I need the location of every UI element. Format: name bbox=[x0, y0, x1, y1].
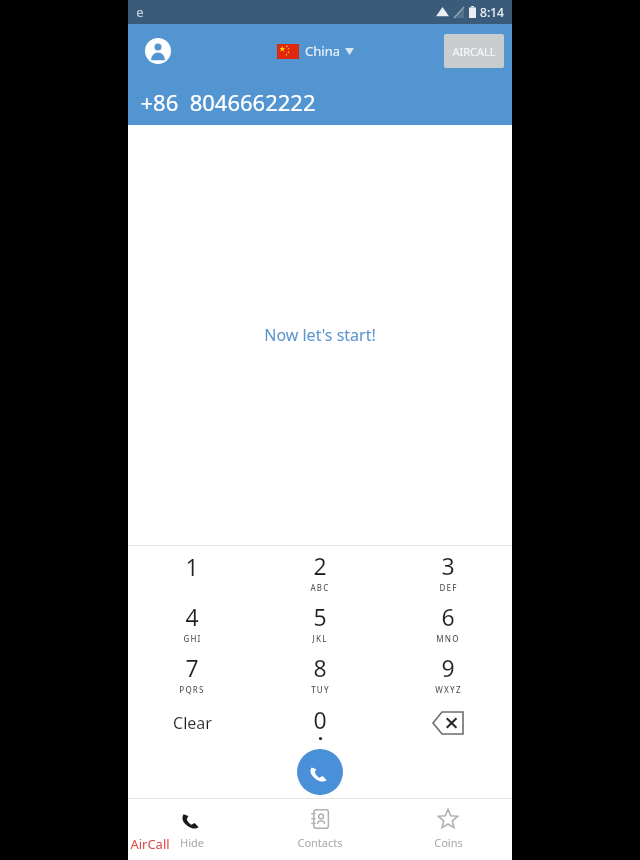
button[interactable]: 3 bbox=[384, 546, 512, 597]
button[interactable]: 4 bbox=[128, 597, 256, 648]
staticText: AirCall bbox=[130, 835, 170, 853]
button[interactable]: AIRCALL bbox=[444, 34, 504, 68]
staticText: TUY bbox=[311, 684, 330, 695]
staticText: JKL bbox=[312, 633, 328, 644]
staticText: e bbox=[136, 3, 144, 21]
button[interactable]: 2 bbox=[256, 546, 384, 597]
button[interactable]: Contacts bbox=[256, 798, 384, 860]
staticText: ABC bbox=[310, 582, 330, 593]
button[interactable]: 5 bbox=[256, 597, 384, 648]
staticText: Contacts bbox=[297, 835, 343, 850]
staticText: +86 8046662222 bbox=[140, 87, 316, 117]
button[interactable]: 9 bbox=[384, 648, 512, 699]
button[interactable]: 8 bbox=[256, 648, 384, 699]
button[interactable]: 0 bbox=[256, 699, 384, 746]
button[interactable]: 6 bbox=[384, 597, 512, 648]
staticText: Coins bbox=[434, 835, 463, 850]
staticText: 1 bbox=[185, 551, 199, 582]
button[interactable]: Hide bbox=[128, 798, 256, 860]
staticText: 8 bbox=[313, 652, 327, 683]
staticText: 2 bbox=[313, 550, 327, 581]
staticText: Now let's start! bbox=[264, 324, 376, 346]
staticText: 4 bbox=[185, 601, 199, 632]
staticText: China bbox=[305, 42, 340, 60]
staticText: 5 bbox=[313, 601, 327, 632]
button[interactable]: 1 bbox=[128, 546, 256, 597]
button[interactable]: Coins bbox=[384, 798, 512, 860]
staticText: 3 bbox=[441, 550, 455, 581]
staticText: 8:14 bbox=[480, 4, 504, 20]
button[interactable]: Clear bbox=[128, 699, 256, 746]
button[interactable]: Profile bbox=[138, 31, 178, 71]
button[interactable]: 7 bbox=[128, 648, 256, 699]
staticText: Hide bbox=[180, 835, 204, 850]
staticText: AIRCALL bbox=[452, 44, 496, 59]
staticText: 9 bbox=[441, 652, 455, 683]
button[interactable]: China bbox=[273, 38, 358, 64]
staticText: DEF bbox=[439, 582, 458, 593]
staticText: MNO bbox=[436, 633, 460, 644]
staticText: WXYZ bbox=[435, 684, 462, 695]
button[interactable]: Call bbox=[297, 749, 343, 795]
staticText: GHI bbox=[183, 633, 202, 644]
staticText: 0 bbox=[313, 704, 327, 735]
button[interactable]: Backspace bbox=[384, 699, 512, 746]
staticText: PQRS bbox=[179, 684, 205, 695]
staticText: Clear bbox=[173, 712, 212, 734]
staticText: 6 bbox=[441, 601, 455, 632]
staticText: 7 bbox=[185, 652, 199, 683]
